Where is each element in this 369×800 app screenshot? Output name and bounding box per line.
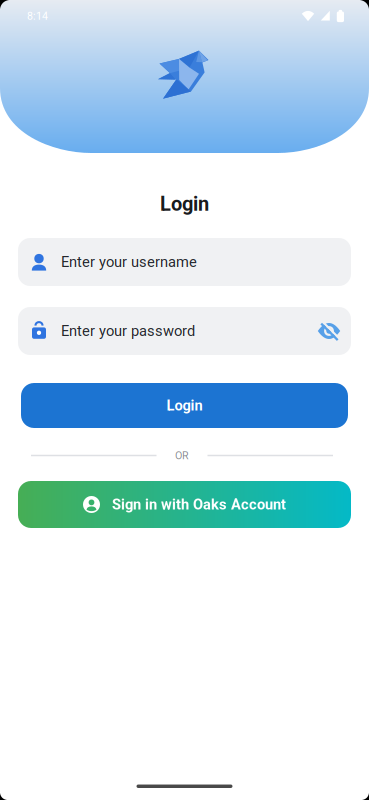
button[interactable]: Sign in with Oaks Account <box>18 481 351 528</box>
staticText: 8:14 <box>27 10 48 22</box>
staticText: OR <box>175 449 189 462</box>
staticText: Login <box>160 193 209 215</box>
staticText: Enter your password <box>61 323 195 339</box>
staticText: Login <box>166 397 202 414</box>
button[interactable]: Show password <box>317 319 341 343</box>
button[interactable]: Enter your username <box>18 238 351 286</box>
button[interactable]: Enter your password <box>18 307 351 355</box>
staticText: Sign in with Oaks Account <box>112 496 286 513</box>
staticText: Enter your username <box>61 254 197 270</box>
button[interactable]: Login <box>21 383 348 428</box>
